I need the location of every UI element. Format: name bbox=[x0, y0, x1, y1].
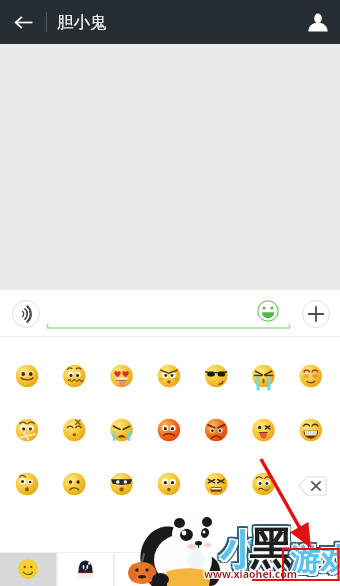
button[interactable]: Contact profile bbox=[301, 5, 335, 39]
staticText: www.xiaohei.com bbox=[203, 566, 296, 580]
staticText: 游戏 bbox=[287, 540, 340, 578]
staticText: 小 bbox=[221, 527, 262, 579]
staticText: 黑 bbox=[250, 519, 294, 574]
staticText: 小 bbox=[219, 527, 260, 579]
staticText: 小 bbox=[217, 526, 258, 578]
staticText: 游戏 bbox=[291, 540, 340, 578]
button[interactable]: More options bbox=[302, 300, 330, 328]
staticText: 小 bbox=[220, 525, 261, 577]
staticText: 小 bbox=[220, 526, 261, 578]
staticText: 小 bbox=[221, 523, 262, 575]
button[interactable]: Back bbox=[7, 6, 39, 38]
staticText: 小 bbox=[219, 523, 260, 575]
staticText: 小 bbox=[219, 526, 260, 578]
staticText: 黑 bbox=[251, 522, 295, 577]
staticText: 游戏 bbox=[291, 538, 340, 576]
staticText: www.xiaohei.com bbox=[205, 567, 298, 581]
staticText: 游戏 bbox=[290, 540, 340, 578]
staticText: 小 bbox=[219, 528, 260, 580]
staticText: 黑 bbox=[249, 523, 293, 578]
staticText: www.xiaohei.com bbox=[203, 567, 296, 581]
staticText: www.xiaohei.com bbox=[204, 568, 297, 582]
staticText: www.xiaohei.com bbox=[203, 568, 296, 582]
staticText: www.xiaohei.com bbox=[205, 568, 298, 582]
staticText: 黑 bbox=[250, 525, 294, 580]
staticText: 游戏 bbox=[292, 543, 340, 581]
staticText: 黑 bbox=[250, 523, 294, 578]
staticText: 游戏 bbox=[290, 538, 340, 576]
staticText: 小 bbox=[221, 529, 262, 581]
staticText: 小 bbox=[220, 525, 261, 577]
staticText: 黑 bbox=[246, 522, 290, 577]
staticText: 游戏 bbox=[292, 540, 340, 578]
button[interactable]: QQ sticker tab bbox=[58, 552, 113, 586]
staticText: 游戏 bbox=[291, 544, 340, 582]
staticText: 游戏 bbox=[289, 540, 340, 578]
staticText: 黑 bbox=[248, 523, 292, 578]
staticText: www.xiaohei.com bbox=[204, 567, 297, 581]
button[interactable]: Default emoji tab bbox=[0, 552, 56, 586]
staticText: 小 bbox=[217, 523, 258, 575]
staticText: 游戏 bbox=[287, 538, 340, 576]
staticText: 小 bbox=[219, 529, 260, 581]
staticText: 游戏 bbox=[287, 544, 340, 582]
staticText: 黑 bbox=[250, 521, 294, 576]
staticText: 游戏 bbox=[290, 540, 340, 578]
staticText: 黑 bbox=[249, 524, 293, 579]
staticText: 小 bbox=[223, 526, 264, 578]
staticText: 黑 bbox=[251, 521, 295, 576]
staticText: 小 bbox=[219, 525, 260, 577]
staticText: 黑 bbox=[249, 522, 293, 577]
staticText: 黑 bbox=[248, 521, 292, 576]
staticText: 黑 bbox=[249, 521, 293, 576]
staticText: 游戏 bbox=[293, 544, 340, 582]
staticText: 游戏 bbox=[289, 544, 340, 582]
staticText: 黑 bbox=[252, 523, 296, 578]
staticText: 游戏 bbox=[292, 541, 340, 579]
staticText: 游戏 bbox=[289, 541, 340, 579]
button[interactable]: Backspace bbox=[298, 476, 327, 496]
staticText: 小 bbox=[223, 527, 264, 579]
staticText: 小 bbox=[221, 525, 262, 577]
button[interactable]: Emoji keyboard bbox=[256, 299, 280, 323]
staticText: 小 bbox=[217, 527, 258, 579]
staticText: 游戏 bbox=[290, 544, 340, 582]
staticText: 小 bbox=[220, 528, 261, 580]
staticText: 黑 bbox=[248, 522, 292, 577]
staticText: 小 bbox=[217, 529, 258, 581]
staticText: 黑 bbox=[248, 525, 292, 580]
staticText: 黑 bbox=[248, 522, 292, 577]
staticText: 胆小鬼 bbox=[57, 12, 107, 33]
staticText: www.xiaohei.com bbox=[205, 566, 298, 580]
staticText: 黑 bbox=[246, 525, 290, 580]
staticText: 游戏 bbox=[289, 541, 340, 579]
staticText: 黑 bbox=[248, 524, 292, 579]
staticText: 游戏 bbox=[289, 540, 340, 578]
staticText: 黑 bbox=[246, 521, 290, 576]
staticText: 游戏 bbox=[291, 541, 340, 579]
button[interactable]: Voice message bbox=[12, 300, 40, 328]
staticText: 黑 bbox=[249, 525, 293, 580]
staticText: 黑 bbox=[248, 521, 292, 576]
staticText: 游戏 bbox=[290, 543, 340, 581]
staticText: 小 bbox=[222, 525, 263, 577]
staticText: 黑 bbox=[249, 519, 293, 574]
staticText: 小 bbox=[222, 528, 263, 580]
staticText: 小 bbox=[221, 526, 262, 578]
staticText: 小 bbox=[219, 526, 260, 578]
staticText: 小 bbox=[217, 525, 258, 577]
staticText: 黑 bbox=[246, 523, 290, 578]
staticText: 游戏 bbox=[293, 541, 340, 579]
staticText: 黑 bbox=[252, 525, 296, 580]
staticText: 游戏 bbox=[287, 542, 340, 580]
staticText: 游戏 bbox=[290, 542, 340, 580]
staticText: 黑 bbox=[248, 519, 292, 574]
staticText: 游戏 bbox=[289, 542, 340, 580]
staticText: 游戏 bbox=[287, 541, 340, 579]
staticText: 小 bbox=[222, 526, 263, 578]
staticText: 黑 bbox=[249, 521, 293, 576]
staticText: 小 bbox=[223, 529, 264, 581]
staticText: 游戏 bbox=[293, 538, 340, 576]
staticText: 黑 bbox=[246, 519, 290, 574]
staticText: 游戏 bbox=[293, 540, 340, 578]
